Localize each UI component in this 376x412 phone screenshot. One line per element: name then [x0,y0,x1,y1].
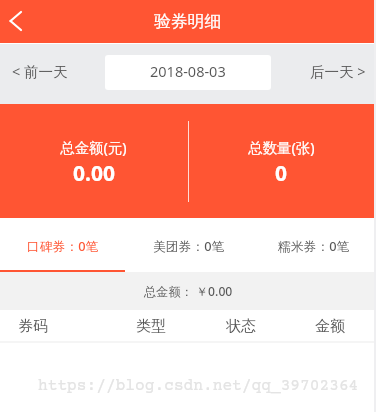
staticText: 糯米券：0笔 [278,237,350,254]
button[interactable]: 美团券：0笔 [126,218,251,272]
staticText: 2018-08-03 [150,61,226,81]
button[interactable]: Back [0,0,44,43]
button[interactable]: 口碑券：0笔 [0,218,126,272]
staticText: 0.00 [73,159,115,188]
staticText: 后一天 > [310,61,366,81]
button[interactable]: < 前一天 [0,44,80,104]
staticText: 状态 [226,317,256,336]
staticText: 0 [275,159,288,188]
staticText: 美团券：0笔 [153,237,225,254]
button[interactable]: 糯米券：0笔 [251,218,376,272]
staticText: 口碑券：0笔 [27,237,99,254]
staticText: 总金额： ￥0.00 [144,283,233,300]
staticText: 总金额(元) [60,137,127,157]
button[interactable]: 2018-08-03 [105,55,271,90]
staticText: < 前一天 [12,61,68,81]
staticText: 总数量(张) [248,137,315,157]
staticText: https://blog.csdn.net/qq_39702364 [38,377,359,395]
staticText: 券码 [18,317,48,336]
button[interactable]: 后一天 > [298,44,376,104]
staticText: 类型 [136,317,166,336]
staticText: 验券明细 [154,11,222,32]
staticText: 金额 [315,317,345,336]
